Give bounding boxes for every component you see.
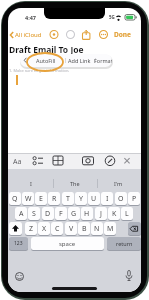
staticText: D: [45, 209, 51, 219]
button[interactable]: K: [108, 207, 120, 220]
staticText: 5G: [109, 14, 115, 20]
staticText: 4:47: [25, 14, 36, 21]
staticText: I: [106, 194, 109, 204]
button[interactable]: Y: [75, 192, 87, 205]
staticText: E: [39, 194, 43, 204]
staticText: V: [69, 224, 74, 234]
button[interactable]: P: [128, 192, 140, 205]
button[interactable]: W: [22, 192, 34, 205]
button[interactable]: E: [35, 192, 47, 205]
staticText: A: [19, 209, 24, 219]
staticText: Done: [114, 30, 131, 39]
staticText: X: [42, 224, 47, 234]
button[interactable]: L: [121, 207, 133, 220]
staticText: Format: [94, 57, 112, 64]
button[interactable]: I: [9, 176, 52, 190]
staticText: I'm: [114, 180, 123, 187]
button[interactable]: Q: [9, 192, 21, 205]
button[interactable]: A: [15, 207, 27, 220]
staticText: B: [82, 224, 87, 234]
staticText: R: [52, 194, 57, 204]
staticText: 1. Make sure to get information.: [9, 68, 70, 73]
staticText: T: [66, 194, 70, 204]
staticText: Q: [12, 194, 18, 204]
button[interactable]: AutoFill: [31, 54, 61, 67]
button[interactable]: space: [31, 237, 104, 250]
button[interactable]: J: [95, 207, 107, 220]
staticText: F: [59, 209, 63, 219]
staticText: N: [94, 224, 100, 234]
button[interactable]: Format: [93, 54, 112, 67]
button[interactable]: The: [53, 176, 96, 190]
staticText: return: [116, 240, 133, 247]
button[interactable]: T: [62, 192, 74, 205]
staticText: Add Link: [68, 57, 91, 64]
button[interactable]: R: [48, 192, 60, 205]
button[interactable]: V: [65, 222, 77, 235]
staticText: J: [100, 209, 102, 219]
button[interactable]: return: [107, 237, 141, 250]
staticText: W: [25, 194, 32, 204]
staticText: K: [112, 209, 117, 219]
staticText: P: [132, 194, 137, 204]
staticText: U: [91, 194, 97, 204]
staticText: Aa: [13, 157, 22, 167]
staticText: 123: [14, 240, 23, 247]
button[interactable]: H: [81, 207, 93, 220]
staticText: O: [118, 194, 124, 204]
staticText: M: [107, 224, 114, 234]
button[interactable]: S: [28, 207, 40, 220]
button[interactable]: D: [42, 207, 54, 220]
staticText: H: [84, 209, 90, 219]
button[interactable]: Done: [114, 29, 131, 40]
staticText: S: [32, 209, 36, 219]
button[interactable]: F: [55, 207, 67, 220]
button[interactable]: B: [78, 222, 90, 235]
staticText: Draft Email To Joe: [9, 44, 84, 56]
staticText: space: [59, 240, 76, 248]
staticText: I: [30, 180, 32, 187]
button[interactable]: [15, 272, 24, 281]
staticText: C: [55, 224, 60, 234]
button[interactable]: I: [101, 192, 113, 205]
button[interactable]: G: [68, 207, 80, 220]
staticText: Z: [29, 224, 34, 234]
button[interactable]: [125, 270, 133, 282]
button[interactable]: N: [91, 222, 103, 235]
button[interactable]: U: [88, 192, 100, 205]
button[interactable]: [9, 222, 22, 235]
staticText: AutoFill: [36, 57, 56, 64]
staticText: G: [71, 209, 77, 219]
button[interactable]: [128, 222, 141, 235]
staticText: The: [70, 180, 80, 187]
button[interactable]: Z: [25, 222, 37, 235]
button[interactable]: O: [115, 192, 127, 205]
staticText: L: [125, 209, 129, 219]
staticText: Y: [79, 194, 83, 204]
button[interactable]: C: [51, 222, 63, 235]
button[interactable]: Add Link: [65, 54, 94, 67]
staticText: All iCloud: [15, 31, 42, 39]
button[interactable]: I'm: [97, 176, 140, 190]
button[interactable]: All iCloud: [9, 29, 42, 40]
button[interactable]: M: [104, 222, 116, 235]
button[interactable]: X: [38, 222, 50, 235]
button[interactable]: 123: [9, 237, 28, 250]
